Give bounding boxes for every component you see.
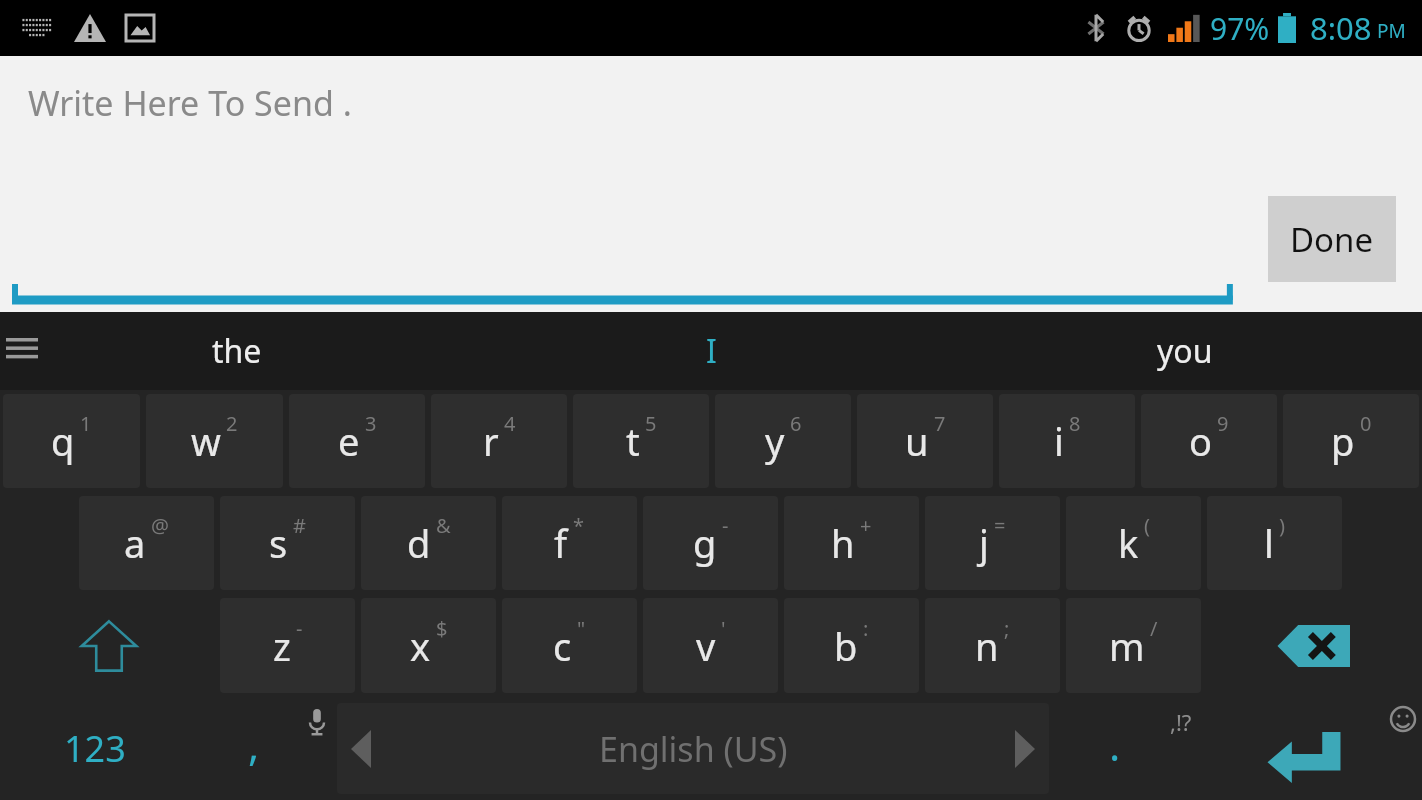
- staticText: /: [1150, 615, 1158, 642]
- staticText: 6: [790, 410, 802, 437]
- staticText: @: [151, 512, 169, 539]
- staticText: 97%: [1210, 8, 1270, 49]
- staticText: q: [51, 415, 75, 467]
- button[interactable]: I: [474, 312, 948, 390]
- staticText: :: [863, 615, 869, 642]
- button[interactable]: f: [502, 496, 637, 590]
- staticText: t: [626, 415, 640, 467]
- staticText: y: [765, 415, 785, 467]
- button[interactable]: x: [361, 598, 496, 693]
- staticText: ,: [248, 716, 260, 773]
- staticText: #: [293, 512, 306, 539]
- staticText: English (US): [599, 726, 788, 772]
- staticText: c: [553, 620, 572, 672]
- staticText: the: [212, 329, 262, 373]
- button[interactable]: Period: [1055, 701, 1194, 796]
- button[interactable]: n: [925, 598, 1060, 693]
- staticText: l: [1264, 517, 1274, 569]
- staticText: j: [979, 517, 989, 569]
- button[interactable]: e: [289, 394, 425, 488]
- button[interactable]: Comma, voice input: [192, 701, 331, 796]
- button[interactable]: i: [999, 394, 1135, 488]
- staticText: &: [436, 512, 451, 539]
- staticText: s: [269, 517, 288, 569]
- staticText: ): [1279, 512, 1285, 539]
- button[interactable]: z: [220, 598, 355, 693]
- staticText: i: [1054, 415, 1064, 467]
- staticText: 0: [1360, 410, 1372, 437]
- staticText: -: [722, 512, 729, 539]
- staticText: x: [410, 620, 431, 672]
- button[interactable]: b: [784, 598, 919, 693]
- staticText: 3: [365, 410, 377, 437]
- button[interactable]: l: [1207, 496, 1342, 590]
- staticText: ": [577, 615, 586, 642]
- staticText: k: [1118, 517, 1139, 569]
- button[interactable]: c: [502, 598, 637, 693]
- staticText: I: [706, 329, 717, 373]
- staticText: f: [554, 517, 568, 569]
- staticText: u: [905, 415, 929, 467]
- button[interactable]: p: [1283, 394, 1419, 488]
- button[interactable]: Suggestion options: [2, 323, 42, 379]
- staticText: p: [1331, 415, 1355, 467]
- staticText: *: [573, 512, 585, 539]
- button[interactable]: d: [361, 496, 496, 590]
- button[interactable]: v: [643, 598, 778, 693]
- button[interactable]: r: [431, 394, 567, 488]
- staticText: +: [860, 512, 872, 539]
- staticText: (: [1144, 512, 1150, 539]
- staticText: g: [693, 517, 717, 569]
- button[interactable]: j: [925, 496, 1060, 590]
- staticText: Done: [1290, 217, 1374, 262]
- button[interactable]: g: [643, 496, 778, 590]
- staticText: m: [1109, 620, 1145, 672]
- button[interactable]: h: [784, 496, 919, 590]
- staticText: you: [1157, 329, 1213, 373]
- staticText: h: [831, 517, 855, 569]
- staticText: ;: [1004, 615, 1010, 642]
- button[interactable]: a: [79, 496, 214, 590]
- staticText: ': [721, 615, 726, 642]
- staticText: 8:08: [1310, 7, 1372, 49]
- button[interactable]: 123: [3, 701, 186, 796]
- button[interactable]: m: [1066, 598, 1201, 693]
- staticText: 4: [504, 410, 516, 437]
- button[interactable]: Enter: [1200, 701, 1419, 796]
- staticText: w: [191, 415, 221, 467]
- button[interactable]: Backspace: [1207, 598, 1419, 693]
- staticText: a: [124, 517, 146, 569]
- staticText: r: [483, 415, 499, 467]
- staticText: 123: [64, 724, 126, 773]
- staticText: -: [296, 615, 303, 642]
- staticText: 8: [1069, 410, 1081, 437]
- button[interactable]: q: [3, 394, 140, 488]
- button[interactable]: you: [948, 312, 1422, 390]
- button[interactable]: o: [1141, 394, 1277, 488]
- staticText: e: [338, 415, 360, 467]
- staticText: 7: [934, 410, 946, 437]
- button[interactable]: u: [857, 394, 993, 488]
- staticText: $: [436, 615, 448, 642]
- staticText: =: [994, 512, 1006, 539]
- staticText: 5: [645, 410, 657, 437]
- staticText: b: [834, 620, 858, 672]
- button[interactable]: k: [1066, 496, 1201, 590]
- staticText: .: [1109, 716, 1121, 773]
- staticText: d: [407, 517, 431, 569]
- button[interactable]: s: [220, 496, 355, 590]
- staticText: 2: [226, 410, 238, 437]
- staticText: PM: [1377, 18, 1406, 44]
- staticText: 1: [80, 410, 92, 437]
- button[interactable]: the: [0, 312, 474, 390]
- staticText: ,!?: [1170, 707, 1192, 737]
- button[interactable]: t: [573, 394, 709, 488]
- staticText: v: [696, 620, 716, 672]
- button[interactable]: Shift: [3, 598, 214, 693]
- staticText: Write Here To Send .: [28, 80, 352, 126]
- staticText: o: [1189, 415, 1212, 467]
- button[interactable]: Done: [1268, 196, 1396, 282]
- button[interactable]: y: [715, 394, 851, 488]
- button[interactable]: w: [146, 394, 283, 488]
- button[interactable]: Space, English (US): [337, 703, 1049, 794]
